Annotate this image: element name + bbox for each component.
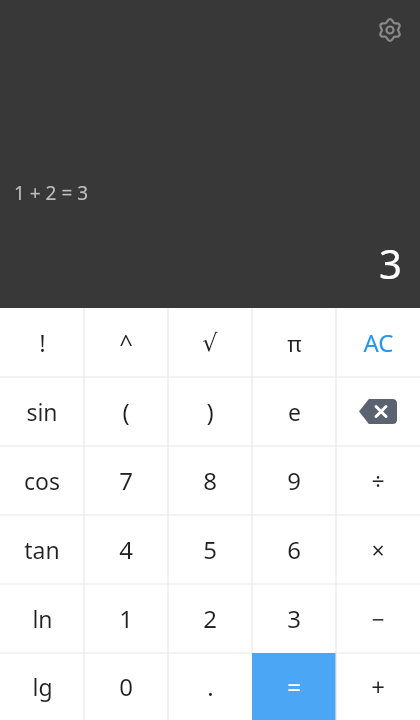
staticText: e	[288, 396, 301, 427]
button[interactable]: ln	[0, 584, 84, 653]
button[interactable]: cos	[0, 446, 84, 515]
staticText: 5	[203, 533, 217, 566]
button[interactable]: (	[84, 377, 168, 446]
staticText: π	[287, 328, 302, 358]
button[interactable]: 7	[84, 446, 168, 515]
staticText: ×	[371, 534, 385, 565]
staticText: sin	[26, 396, 58, 427]
staticText: ^	[119, 326, 133, 359]
staticText: −	[371, 603, 385, 634]
button[interactable]: π	[252, 308, 336, 377]
staticText: lg	[32, 671, 53, 702]
button[interactable]: √	[168, 308, 252, 377]
staticText: 4	[119, 533, 133, 566]
button[interactable]: +	[336, 653, 420, 720]
button[interactable]: 5	[168, 515, 252, 584]
staticText: √	[202, 329, 218, 357]
staticText: cos	[24, 465, 60, 496]
staticText: +	[371, 670, 385, 703]
button[interactable]: Settings	[372, 12, 408, 48]
button[interactable]: !	[0, 308, 84, 377]
button[interactable]: sin	[0, 377, 84, 446]
button[interactable]: Backspace	[336, 377, 420, 446]
staticText: !	[39, 326, 46, 359]
staticText: 9	[287, 464, 301, 497]
staticText: .	[207, 670, 214, 703]
staticText: AC	[363, 326, 394, 359]
button[interactable]: −	[336, 584, 420, 653]
button[interactable]: ^	[84, 308, 168, 377]
button[interactable]: tan	[0, 515, 84, 584]
staticText: )	[206, 395, 214, 428]
button[interactable]: 4	[84, 515, 168, 584]
button[interactable]: AC	[336, 308, 420, 377]
button[interactable]: 9	[252, 446, 336, 515]
button[interactable]: 3	[252, 584, 336, 653]
staticText: 7	[119, 464, 133, 497]
staticText: 3	[287, 602, 301, 635]
button[interactable]: lg	[0, 653, 84, 720]
staticText: 3	[379, 236, 402, 290]
button[interactable]: 6	[252, 515, 336, 584]
staticText: 1	[119, 602, 133, 635]
button[interactable]: )	[168, 377, 252, 446]
staticText: 8	[203, 464, 217, 497]
staticText: ÷	[371, 465, 385, 496]
staticText: 0	[119, 670, 133, 703]
button[interactable]: 8	[168, 446, 252, 515]
button[interactable]: ×	[336, 515, 420, 584]
button[interactable]: ÷	[336, 446, 420, 515]
staticText: (	[122, 395, 130, 428]
staticText: 2	[203, 602, 217, 635]
staticText: ln	[32, 603, 53, 634]
button[interactable]: 1	[84, 584, 168, 653]
button[interactable]: =	[252, 653, 336, 720]
button[interactable]: e	[252, 377, 336, 446]
staticText: tan	[24, 534, 60, 565]
staticText: 1 + 2 = 3	[14, 180, 89, 206]
staticText: =	[287, 670, 301, 703]
button[interactable]: 0	[84, 653, 168, 720]
button[interactable]: 2	[168, 584, 252, 653]
button[interactable]: .	[168, 653, 252, 720]
staticText: 6	[287, 533, 301, 566]
